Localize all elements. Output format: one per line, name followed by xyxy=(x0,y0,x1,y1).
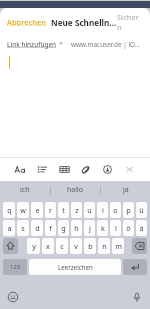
staticText: u xyxy=(87,205,92,215)
button[interactable]: s xyxy=(17,220,29,236)
staticText: ü xyxy=(139,205,144,215)
button[interactable]: Close xyxy=(123,163,136,176)
button[interactable]: Sichern xyxy=(117,12,143,32)
button[interactable]: Attach file xyxy=(79,163,92,176)
button[interactable]: i xyxy=(97,202,108,218)
staticText: Abbrechen xyxy=(7,17,46,27)
staticText: Leerzeichen xyxy=(58,263,93,271)
button[interactable]: j xyxy=(84,220,95,236)
staticText: k xyxy=(101,223,105,233)
button[interactable]: hallo xyxy=(51,181,100,199)
staticText: www.macuser.de | iO... xyxy=(71,40,140,49)
button[interactable]: ö xyxy=(123,220,134,236)
button[interactable]: g xyxy=(58,220,69,236)
button[interactable]: h xyxy=(71,220,82,236)
staticText: s xyxy=(21,223,25,233)
staticText: hallo xyxy=(67,185,84,195)
staticText: p xyxy=(126,205,131,215)
button[interactable]: Emoji xyxy=(7,291,19,303)
staticText: j xyxy=(89,223,91,233)
button[interactable]: Table xyxy=(58,163,71,176)
button[interactable]: p xyxy=(123,202,134,218)
staticText: z xyxy=(75,205,79,215)
staticText: + xyxy=(59,39,64,49)
staticText: a xyxy=(7,223,12,233)
staticText: r xyxy=(49,205,52,215)
staticText: v xyxy=(74,241,78,251)
button[interactable]: a xyxy=(3,220,15,236)
button[interactable]: Bullet list xyxy=(36,163,49,176)
button[interactable]: f xyxy=(45,220,56,236)
button[interactable]: d xyxy=(31,220,43,236)
staticText: g xyxy=(61,223,66,233)
button[interactable]: l xyxy=(110,220,121,236)
button[interactable]: u xyxy=(84,202,95,218)
button[interactable]: Dictate xyxy=(131,291,143,303)
staticText: b xyxy=(88,241,93,251)
staticText: 123 xyxy=(10,263,21,271)
staticText: q xyxy=(7,205,12,215)
button[interactable]: ich xyxy=(0,181,50,199)
button[interactable]: m xyxy=(112,238,124,254)
staticText: h xyxy=(74,223,79,233)
button[interactable]: k xyxy=(97,220,108,236)
button[interactable]: w xyxy=(17,202,29,218)
button[interactable]: t xyxy=(58,202,69,218)
button[interactable]: ja xyxy=(101,181,150,199)
staticText: f xyxy=(49,223,52,233)
button[interactable]: Link hinzufügen xyxy=(7,39,64,49)
staticText: t xyxy=(62,205,65,215)
staticText: y xyxy=(32,241,36,251)
button[interactable]: n xyxy=(98,238,110,254)
button[interactable]: Markup xyxy=(101,163,114,176)
button[interactable]: z xyxy=(71,202,82,218)
button[interactable]: y xyxy=(27,238,40,254)
staticText: c xyxy=(60,241,64,251)
button[interactable]: Text format xyxy=(14,163,27,176)
button[interactable]: v xyxy=(70,238,82,254)
button[interactable]: Shift xyxy=(3,238,18,254)
button[interactable]: Backspace xyxy=(132,238,147,254)
staticText: l xyxy=(115,223,117,233)
button[interactable]: r xyxy=(45,202,56,218)
staticText: ä xyxy=(139,223,144,233)
staticText: o xyxy=(113,205,118,215)
button[interactable]: ä xyxy=(136,220,147,236)
button[interactable]: Return xyxy=(123,259,147,275)
button[interactable]: e xyxy=(31,202,43,218)
button[interactable]: Abbrechen xyxy=(7,17,46,27)
staticText: Neue Schnelln... xyxy=(51,17,117,28)
staticText: i xyxy=(102,205,104,215)
staticText: d xyxy=(35,223,40,233)
button[interactable]: x xyxy=(42,238,54,254)
button[interactable]: c xyxy=(56,238,68,254)
staticText: w xyxy=(20,205,26,215)
button[interactable]: q xyxy=(3,202,15,218)
staticText: ö xyxy=(126,223,131,233)
staticText: Sichern xyxy=(117,12,143,32)
staticText: x xyxy=(46,241,50,251)
staticText: e xyxy=(35,205,40,215)
staticText: ich xyxy=(20,185,30,195)
staticText: n xyxy=(102,241,107,251)
staticText: ja xyxy=(123,185,129,195)
button[interactable]: 123 xyxy=(3,259,27,275)
button[interactable]: b xyxy=(84,238,96,254)
staticText: m xyxy=(115,241,122,251)
button[interactable]: ü xyxy=(136,202,147,218)
staticText: Link hinzufügen xyxy=(7,40,57,49)
button[interactable]: o xyxy=(110,202,121,218)
button[interactable]: Leerzeichen xyxy=(29,259,121,275)
